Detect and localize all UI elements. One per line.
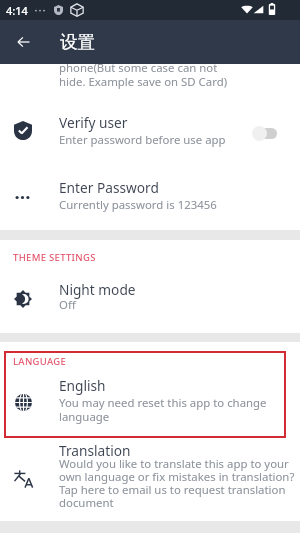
staticText: THEME SETTINGS xyxy=(13,251,96,264)
staticText: Currently password is 123456 xyxy=(59,197,217,213)
staticText: Night mode xyxy=(59,280,136,299)
staticText: phone(But some case can not hide. Exampl… xyxy=(59,60,228,90)
staticText: Enter password before use app xyxy=(59,132,226,148)
staticText: 4:14 xyxy=(6,3,28,18)
staticText: Off xyxy=(59,297,76,313)
button[interactable]: Back xyxy=(3,22,43,62)
button[interactable] xyxy=(0,274,300,328)
staticText: 设置 xyxy=(60,31,95,53)
button[interactable] xyxy=(0,107,300,161)
button[interactable] xyxy=(0,372,300,434)
staticText: Translation xyxy=(59,441,131,460)
staticText: LANGUAGE xyxy=(13,355,67,368)
button[interactable] xyxy=(0,170,300,226)
staticText: Verify user xyxy=(59,113,128,132)
staticText: You may need reset this app to change la… xyxy=(59,395,267,425)
staticText: Enter Password xyxy=(59,178,159,197)
staticText: English xyxy=(59,376,106,395)
staticText: Would you like to translate this app to … xyxy=(59,456,295,510)
button[interactable] xyxy=(0,440,300,518)
